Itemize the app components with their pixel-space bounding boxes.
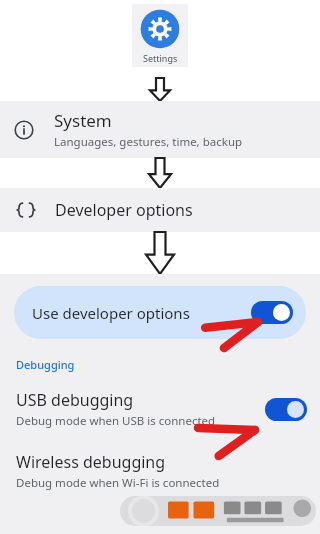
staticText: Languages, gestures, time, backup bbox=[54, 134, 243, 150]
button[interactable]: Developer options bbox=[0, 188, 320, 232]
button[interactable]: Toggle on bbox=[251, 301, 293, 324]
staticText: Debug mode when Wi-Fi is connected bbox=[16, 475, 220, 491]
button[interactable]: Settings bbox=[132, 4, 188, 67]
staticText: Wireless debugging bbox=[16, 451, 166, 473]
staticText: Use developer options bbox=[32, 303, 190, 323]
button[interactable]: Toggle on bbox=[265, 398, 307, 421]
staticText: System bbox=[54, 109, 112, 132]
button[interactable]: USB debugging bbox=[0, 385, 320, 433]
other: Settings bbox=[139, 8, 181, 50]
staticText: USB debugging bbox=[16, 389, 134, 411]
button[interactable]: System bbox=[0, 101, 320, 158]
staticText: Developer options bbox=[55, 199, 193, 221]
staticText: Debug mode when USB is connected bbox=[16, 413, 216, 429]
button[interactable]: Wireless debugging bbox=[0, 447, 320, 495]
button[interactable]: Use developer options bbox=[14, 286, 306, 339]
staticText: Settings bbox=[143, 52, 178, 64]
staticText: Debugging bbox=[16, 357, 75, 372]
